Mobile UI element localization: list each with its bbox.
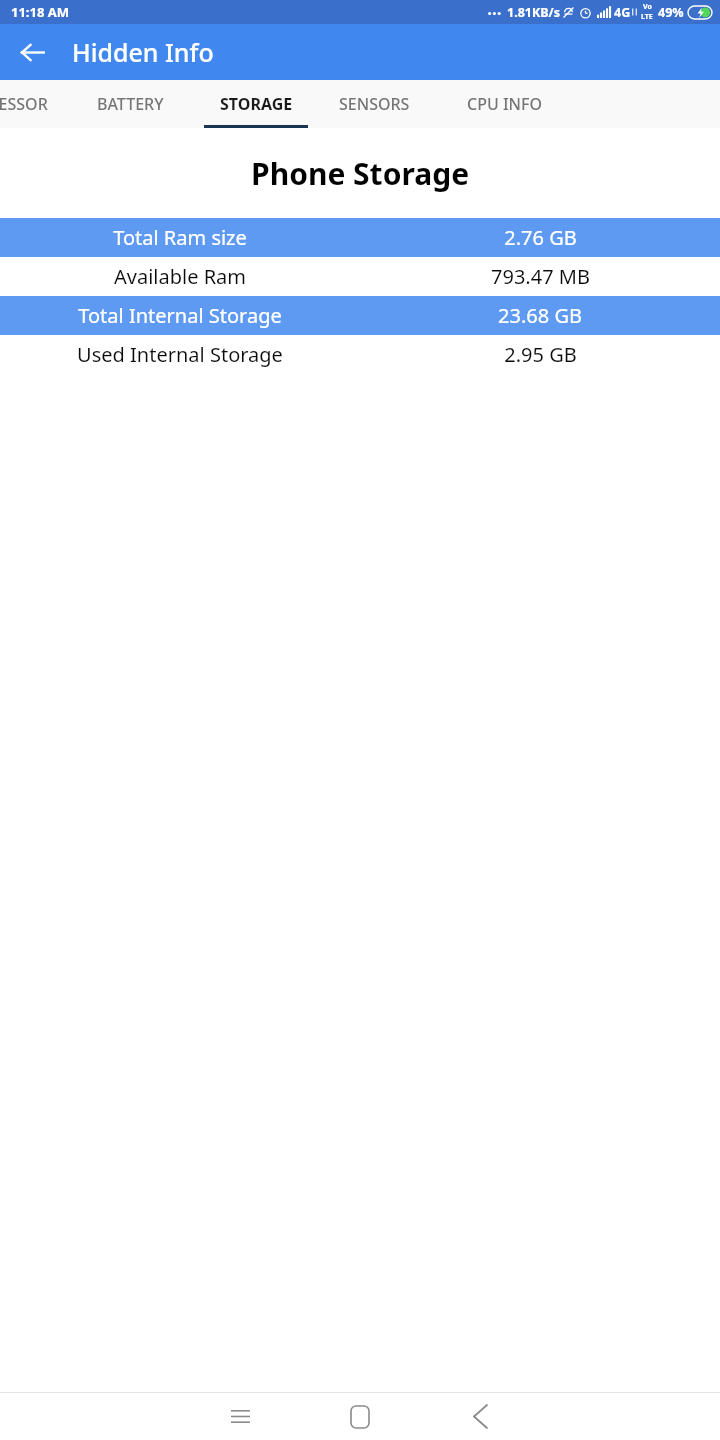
button[interactable]: SENSORS [314,80,434,128]
staticText: CPU INFO [467,93,542,115]
staticText: SENSORS [339,93,410,115]
button[interactable]: Total Ram size [0,218,720,257]
staticText: 2.76 GB [504,224,577,251]
button[interactable]: Available Ram [0,257,720,296]
staticText: 4G [614,4,631,21]
button[interactable]: PROCESSOR [0,80,62,128]
staticText: 11:18 AM [11,3,70,21]
staticText: LTE [641,12,653,22]
staticText: Used Internal Storage [77,341,283,368]
button[interactable]: STORAGE [198,80,314,128]
staticText: BATTERY [97,93,164,115]
button[interactable]: Back [8,28,56,76]
button[interactable]: CPU INFO [434,80,574,128]
staticText: 793.47 MB [491,263,590,290]
button[interactable]: Home [300,1393,420,1440]
staticText: Total Internal Storage [78,302,282,329]
button[interactable]: BATTERY [62,80,198,128]
staticText: STORAGE [220,93,293,115]
staticText: PROCESSOR [0,93,48,115]
staticText: Available Ram [114,263,246,290]
staticText: Phone Storage [251,153,470,194]
staticText: 2.95 GB [504,341,577,368]
staticText: Vo [643,2,652,12]
staticText: 23.68 GB [498,302,582,329]
button[interactable]: Used Internal Storage [0,335,720,374]
staticText: Hidden Info [72,35,214,69]
button[interactable]: Back [420,1393,540,1440]
staticText: 1.81KB/s [507,4,561,21]
staticText: 49% [658,4,684,21]
staticText: Total Ram size [113,224,247,251]
button[interactable]: Total Internal Storage [0,296,720,335]
button[interactable]: Recent apps [180,1393,300,1440]
